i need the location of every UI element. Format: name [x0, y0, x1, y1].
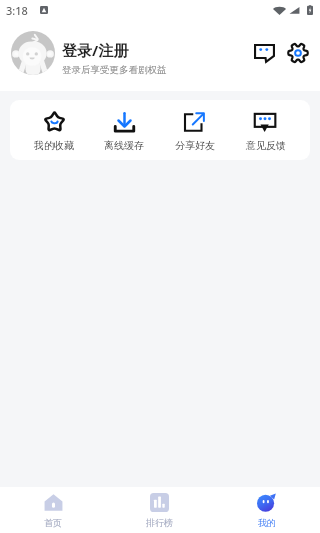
button[interactable]: 我的收藏: [19, 109, 89, 152]
staticText: 首页: [44, 517, 62, 528]
staticText: 分享好友: [175, 139, 215, 152]
button[interactable]: 设置: [283, 38, 313, 68]
staticText: 登录后享受更多看剧权益: [62, 64, 167, 76]
staticText: 排行榜: [146, 517, 173, 528]
staticText: 3:18: [6, 3, 28, 18]
button[interactable]: 首页: [0, 487, 106, 533]
staticText: 离线缓存: [104, 139, 144, 152]
button[interactable]: 分享好友: [159, 109, 230, 152]
staticText: 我的: [258, 517, 276, 528]
button[interactable]: 离线缓存: [89, 109, 159, 152]
staticText: 登录/注册: [62, 40, 129, 60]
staticText: 意见反馈: [246, 139, 286, 152]
button[interactable]: 消息: [249, 38, 279, 68]
button[interactable]: 排行榜: [106, 487, 213, 533]
button[interactable]: 我的: [213, 487, 320, 533]
staticText: 我的收藏: [34, 139, 74, 152]
button[interactable]: 意见反馈: [230, 109, 301, 152]
